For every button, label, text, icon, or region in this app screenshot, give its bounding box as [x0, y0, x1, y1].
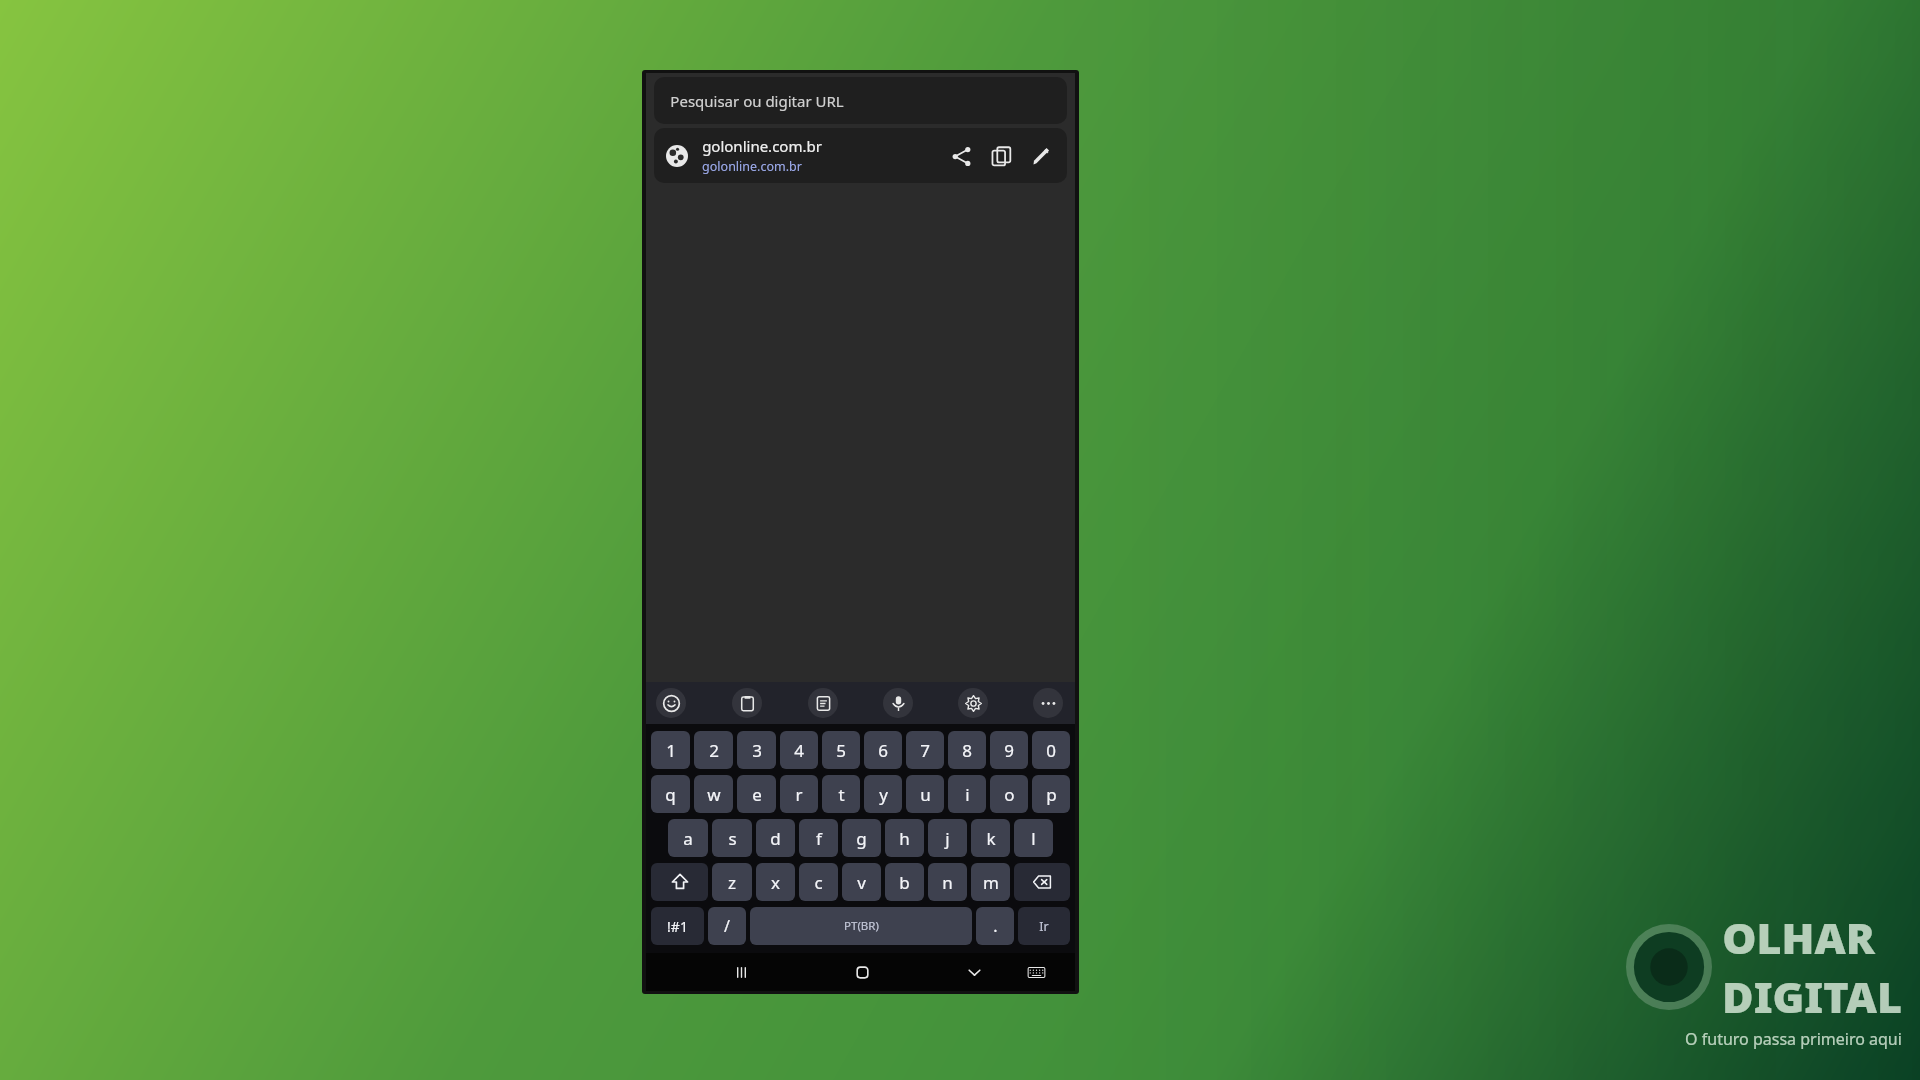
- button[interactable]: Settings: [958, 688, 988, 718]
- staticText: q: [665, 783, 676, 806]
- button[interactable]: 9: [990, 731, 1028, 769]
- button[interactable]: Edit: [1021, 136, 1061, 176]
- button[interactable]: Clipboard: [732, 688, 762, 718]
- staticText: v: [857, 871, 866, 894]
- staticText: w: [707, 783, 721, 806]
- button[interactable]: Ir: [1018, 907, 1070, 945]
- button[interactable]: Shift: [651, 863, 708, 901]
- button[interactable]: l: [1014, 819, 1053, 857]
- staticText: t: [838, 783, 845, 806]
- button[interactable]: m: [971, 863, 1010, 901]
- button[interactable]: p: [1032, 775, 1070, 813]
- button[interactable]: Copy: [981, 136, 1021, 176]
- button[interactable]: g: [842, 819, 881, 857]
- button[interactable]: Hide keyboard: [956, 954, 992, 990]
- button[interactable]: u: [906, 775, 944, 813]
- staticText: /: [724, 915, 730, 937]
- button[interactable]: a: [668, 819, 708, 857]
- button[interactable]: v: [842, 863, 881, 901]
- staticText: y: [879, 783, 888, 806]
- staticText: c: [814, 871, 823, 894]
- staticText: x: [771, 871, 780, 894]
- staticText: p: [1046, 783, 1057, 806]
- staticText: j: [945, 827, 950, 850]
- button[interactable]: 6: [864, 731, 902, 769]
- button[interactable]: 7: [906, 731, 944, 769]
- button[interactable]: Recent apps: [723, 954, 759, 990]
- staticText: n: [942, 871, 953, 894]
- button[interactable]: y: [864, 775, 902, 813]
- staticText: z: [728, 871, 736, 894]
- staticText: 6: [878, 739, 888, 762]
- button[interactable]: Change keyboard: [1018, 954, 1054, 990]
- button[interactable]: Voice input: [883, 688, 913, 718]
- staticText: a: [683, 827, 693, 850]
- button[interactable]: n: [928, 863, 967, 901]
- button[interactable]: c: [799, 863, 838, 901]
- button[interactable]: /: [708, 907, 746, 945]
- button[interactable]: q: [651, 775, 690, 813]
- button[interactable]: 4: [780, 731, 818, 769]
- staticText: .: [993, 915, 998, 937]
- staticText: d: [770, 827, 781, 850]
- button[interactable]: e: [737, 775, 776, 813]
- staticText: i: [965, 783, 970, 806]
- button[interactable]: 5: [822, 731, 860, 769]
- staticText: PT(BR): [844, 918, 879, 934]
- staticText: golonline.com.br: [702, 136, 822, 156]
- staticText: Ir: [1039, 918, 1049, 935]
- button[interactable]: z: [712, 863, 752, 901]
- button[interactable]: !#1: [651, 907, 704, 945]
- staticText: 0: [1046, 739, 1056, 762]
- staticText: DIGITAL: [1722, 967, 1902, 1026]
- staticText: O futuro passa primeiro aqui: [1685, 1028, 1902, 1050]
- button[interactable]: 1: [651, 731, 690, 769]
- button[interactable]: w: [694, 775, 733, 813]
- button[interactable]: 8: [948, 731, 986, 769]
- staticText: l: [1031, 827, 1036, 850]
- staticText: 3: [752, 739, 762, 762]
- button[interactable]: 2: [694, 731, 733, 769]
- button[interactable]: t: [822, 775, 860, 813]
- staticText: golonline.com.br: [702, 158, 802, 175]
- button[interactable]: k: [971, 819, 1010, 857]
- button[interactable]: PT(BR): [750, 907, 972, 945]
- button[interactable]: f: [799, 819, 838, 857]
- button[interactable]: o: [990, 775, 1028, 813]
- button[interactable]: .: [976, 907, 1014, 945]
- staticText: 9: [1004, 739, 1014, 762]
- button[interactable]: Text editor: [808, 688, 838, 718]
- staticText: 7: [920, 739, 930, 762]
- staticText: o: [1004, 783, 1015, 806]
- staticText: !#1: [667, 917, 688, 936]
- button[interactable]: Share: [941, 136, 981, 176]
- button[interactable]: s: [712, 819, 752, 857]
- button[interactable]: b: [885, 863, 924, 901]
- button[interactable]: 0: [1032, 731, 1070, 769]
- staticText: b: [899, 871, 910, 894]
- staticText: OLHAR: [1722, 908, 1875, 967]
- button[interactable]: Emoji: [656, 688, 686, 718]
- staticText: 2: [709, 739, 719, 762]
- button[interactable]: r: [780, 775, 818, 813]
- staticText: Pesquisar ou digitar URL: [670, 91, 844, 111]
- staticText: f: [816, 827, 822, 850]
- button[interactable]: x: [756, 863, 795, 901]
- staticText: s: [728, 827, 737, 850]
- button[interactable]: More options: [1033, 688, 1063, 718]
- button[interactable]: h: [885, 819, 924, 857]
- button[interactable]: Pesquisar ou digitar URL: [654, 77, 1067, 124]
- button[interactable]: d: [756, 819, 795, 857]
- staticText: 8: [962, 739, 972, 762]
- staticText: 1: [666, 739, 676, 762]
- button[interactable]: Backspace: [1014, 863, 1070, 901]
- button[interactable]: 3: [737, 731, 776, 769]
- staticText: k: [986, 827, 996, 850]
- button[interactable]: j: [928, 819, 967, 857]
- staticText: h: [899, 827, 910, 850]
- staticText: g: [856, 827, 867, 850]
- button[interactable]: Home: [844, 954, 880, 990]
- staticText: e: [752, 783, 762, 806]
- button[interactable]: i: [948, 775, 986, 813]
- button[interactable]: golonline.com.br: [654, 128, 1067, 183]
